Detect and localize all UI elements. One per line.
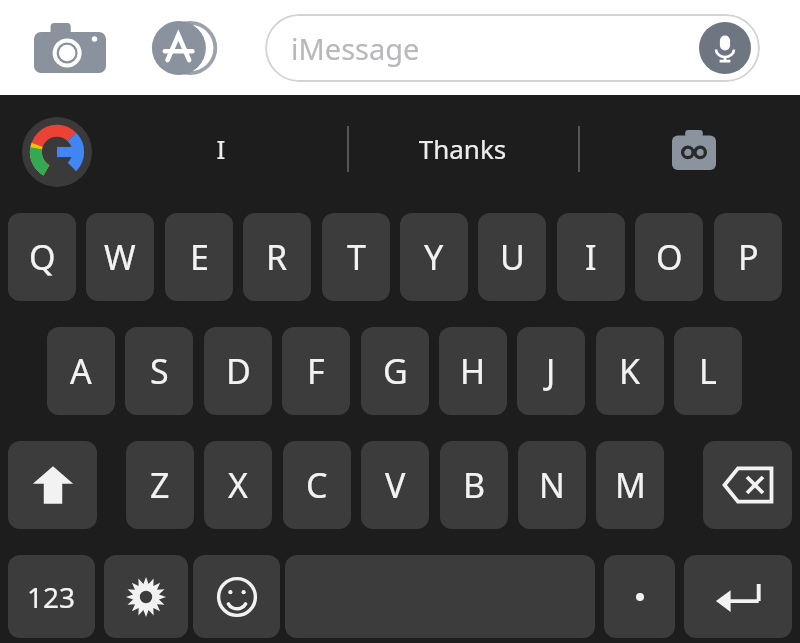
- button[interactable]: Thanks: [347, 131, 578, 166]
- button[interactable]: I: [95, 131, 347, 166]
- button[interactable]: Emoji: [193, 555, 280, 638]
- button[interactable]: Google: [22, 117, 92, 187]
- button[interactable]: X: [204, 441, 272, 529]
- button[interactable]: [604, 555, 675, 638]
- button[interactable]: J: [517, 327, 585, 415]
- button[interactable]: I: [557, 213, 625, 301]
- staticText: I: [585, 234, 597, 280]
- button[interactable]: S: [125, 327, 193, 415]
- staticText: A: [70, 348, 92, 394]
- button[interactable]: Dictation: [699, 22, 751, 74]
- staticText: V: [385, 462, 406, 508]
- staticText: J: [546, 348, 556, 394]
- staticText: W: [104, 234, 136, 280]
- button[interactable]: Q: [8, 213, 76, 301]
- staticText: F: [307, 348, 325, 394]
- button[interactable]: Enter: [684, 555, 792, 638]
- button[interactable]: E: [165, 213, 233, 301]
- button[interactable]: V: [361, 441, 429, 529]
- staticText: Q: [29, 234, 56, 280]
- staticText: K: [619, 348, 641, 394]
- button[interactable]: Y: [400, 213, 468, 301]
- button[interactable]: O: [635, 213, 703, 301]
- staticText: M: [615, 462, 646, 508]
- staticText: N: [539, 462, 565, 508]
- staticText: iMessage: [291, 29, 420, 68]
- button[interactable]: L: [674, 327, 742, 415]
- button[interactable]: T: [322, 213, 390, 301]
- button[interactable]: Settings: [104, 555, 188, 638]
- button[interactable]: F: [282, 327, 350, 415]
- staticText: G: [383, 348, 408, 394]
- staticText: Z: [150, 462, 170, 508]
- button[interactable]: A: [47, 327, 115, 415]
- button[interactable]: Shift: [8, 441, 97, 529]
- button[interactable]: Backspace: [703, 441, 792, 529]
- staticText: U: [500, 234, 525, 280]
- button[interactable]: C: [283, 441, 351, 529]
- staticText: 123: [27, 578, 76, 616]
- button[interactable]: Camera: [28, 20, 112, 76]
- button[interactable]: M: [596, 441, 664, 529]
- button[interactable]: P: [714, 213, 782, 301]
- button[interactable]: App Store: [140, 16, 224, 80]
- staticText: T: [347, 234, 366, 280]
- button[interactable]: iMessage: [265, 14, 760, 82]
- button[interactable]: K: [596, 327, 664, 415]
- button[interactable]: U: [478, 213, 546, 301]
- staticText: X: [228, 462, 248, 508]
- staticText: P: [738, 234, 759, 280]
- staticText: B: [463, 462, 486, 508]
- button[interactable]: B: [440, 441, 508, 529]
- button[interactable]: Z: [126, 441, 194, 529]
- staticText: E: [190, 234, 209, 280]
- staticText: C: [306, 462, 328, 508]
- staticText: S: [150, 348, 169, 394]
- staticText: R: [266, 234, 288, 280]
- staticText: D: [226, 348, 251, 394]
- button[interactable]: G: [361, 327, 429, 415]
- staticText: O: [656, 234, 683, 280]
- button[interactable]: Clipboard: [664, 125, 724, 175]
- staticText: H: [460, 348, 486, 394]
- button[interactable]: W: [86, 213, 154, 301]
- button[interactable]: N: [518, 441, 586, 529]
- staticText: Y: [424, 234, 444, 280]
- button[interactable]: 123: [8, 555, 95, 638]
- button[interactable]: H: [439, 327, 507, 415]
- button[interactable]: D: [204, 327, 272, 415]
- staticText: L: [699, 348, 717, 394]
- button[interactable]: R: [243, 213, 311, 301]
